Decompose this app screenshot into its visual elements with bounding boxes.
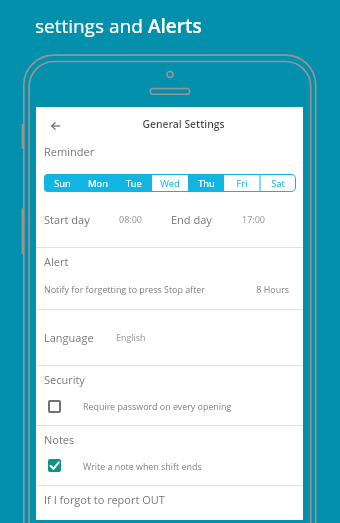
staticText: General Settings [142, 117, 225, 131]
staticText: Wed [160, 177, 180, 190]
staticText: Notes [44, 432, 75, 447]
button[interactable] [36, 275, 303, 309]
button[interactable]: Mon [80, 174, 116, 192]
staticText: settings and [35, 13, 148, 39]
staticText: Thu [198, 177, 215, 190]
staticText: Require password on every opening [83, 400, 232, 412]
staticText: Start day [44, 212, 90, 227]
staticText: English [116, 331, 146, 343]
button[interactable]: Sun [44, 174, 80, 192]
button[interactable] [36, 310, 303, 365]
button[interactable] [36, 196, 303, 247]
button[interactable]: Thu [188, 174, 224, 192]
staticText: 08:00 [119, 213, 142, 225]
staticText: Sun [54, 177, 71, 190]
staticText: Alerts [148, 13, 202, 39]
button[interactable] [36, 486, 303, 520]
button[interactable] [36, 392, 303, 425]
staticText: Write a note when shift ends [83, 460, 202, 472]
button[interactable]: Fri [224, 174, 260, 192]
button[interactable]: Tue [116, 174, 152, 192]
staticText: Alert [44, 254, 69, 269]
staticText: Reminder [44, 144, 95, 159]
staticText: Language [44, 330, 94, 345]
staticText: 17:00 [242, 213, 265, 225]
staticText: Fri [236, 177, 248, 190]
staticText: Security [44, 372, 85, 387]
staticText: Notify for forgetting to press Stop afte… [44, 283, 205, 295]
staticText: Mon [88, 177, 108, 190]
button[interactable] [36, 452, 303, 485]
button[interactable]: Wed [152, 174, 188, 192]
staticText: If I forgot to report OUT [44, 492, 165, 507]
button[interactable]: Back [44, 114, 68, 138]
staticText: End day [171, 212, 212, 227]
staticText: 8 Hours [256, 283, 289, 295]
staticText: Tue [126, 177, 142, 190]
staticText: Sat [271, 177, 285, 190]
button[interactable]: Sat [260, 174, 296, 192]
